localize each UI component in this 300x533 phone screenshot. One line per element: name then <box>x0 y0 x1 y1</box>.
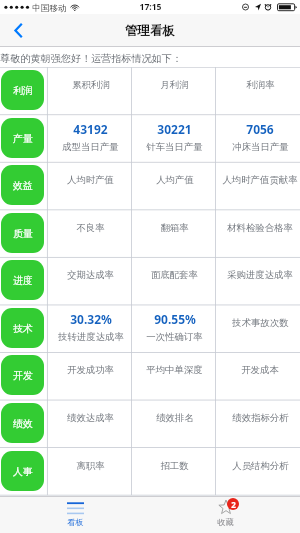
button[interactable]: 采购进度达成率 <box>216 257 300 305</box>
staticText: 月利润 <box>160 79 189 91</box>
staticText: 43192 <box>73 121 108 137</box>
staticText: 招工数 <box>160 460 189 472</box>
button[interactable]: 进度 <box>1 260 44 300</box>
button[interactable]: 月利润 <box>131 67 215 115</box>
staticText: 绩效达成率 <box>67 412 114 424</box>
staticText: 累积利润 <box>72 79 110 91</box>
button[interactable]: 30.32% <box>47 305 131 353</box>
staticText: 成型当日产量 <box>62 141 119 153</box>
staticText: 人员结构分析 <box>232 460 289 472</box>
staticText: 产量 <box>13 132 33 144</box>
button[interactable]: 面底配套率 <box>131 257 215 305</box>
button[interactable]: 绩效排名 <box>131 400 215 448</box>
button[interactable]: 2 <box>150 496 300 533</box>
staticText: 一次性确订率 <box>146 331 203 343</box>
staticText: 绩效 <box>13 417 33 429</box>
staticText: 面底配套率 <box>151 269 198 281</box>
button[interactable]: 翻箱率 <box>131 210 215 257</box>
staticText: 收藏 <box>217 517 234 527</box>
staticText: 管理看板 <box>125 23 175 39</box>
button[interactable]: 看板 <box>0 496 150 533</box>
staticText: 离职率 <box>76 460 105 472</box>
button[interactable]: 离职率 <box>47 448 131 496</box>
staticText: 效益 <box>13 179 33 191</box>
button[interactable]: 利润率 <box>216 67 300 115</box>
button[interactable]: 人事 <box>1 451 44 491</box>
staticText: 进度 <box>13 274 33 286</box>
staticText: 技术事故次数 <box>232 317 289 329</box>
button[interactable]: 交期达成率 <box>47 257 131 305</box>
button[interactable]: 技术事故次数 <box>216 305 300 353</box>
staticText: 平均中单深度 <box>146 364 203 376</box>
staticText: 交期达成率 <box>67 269 114 281</box>
staticText: 材料检验合格率 <box>227 222 293 234</box>
button[interactable]: 开发 <box>1 355 44 395</box>
staticText: 开发成本 <box>241 364 279 376</box>
button[interactable]: 累积利润 <box>47 67 131 115</box>
button[interactable]: 人均时产值贡献率 <box>216 162 300 210</box>
staticText: 采购进度达成率 <box>227 269 293 281</box>
staticText: 2 <box>231 499 236 510</box>
button[interactable]: 绩效指标分析 <box>216 400 300 448</box>
button[interactable]: 7056 <box>216 115 300 163</box>
staticText: 7056 <box>246 121 274 137</box>
staticText: 翻箱率 <box>160 222 189 234</box>
staticText: 人均产值 <box>156 174 194 186</box>
button[interactable]: 平均中单深度 <box>131 352 215 400</box>
staticText: 针车当日产量 <box>146 141 203 153</box>
staticText: 冲床当日产量 <box>232 141 289 153</box>
button[interactable]: 人员结构分析 <box>216 448 300 496</box>
staticText: 开发 <box>13 369 33 381</box>
button[interactable]: 利润 <box>1 70 44 110</box>
staticText: 不良率 <box>76 222 105 234</box>
button[interactable]: 产量 <box>1 118 44 158</box>
staticText: 技转进度达成率 <box>58 331 124 343</box>
staticText: 30.32% <box>70 311 112 327</box>
button[interactable]: 人均产值 <box>131 162 215 210</box>
staticText: 人事 <box>13 465 33 477</box>
staticText: 人均时产值贡献率 <box>222 174 298 186</box>
button[interactable]: 43192 <box>47 115 131 163</box>
staticText: 中国移动 <box>32 3 67 14</box>
button[interactable]: 绩效 <box>1 403 44 443</box>
staticText: 尊敬的黄朝强您好！运营指标情况如下： <box>0 52 182 65</box>
staticText: 30221 <box>157 121 192 137</box>
button[interactable]: 90.55% <box>131 305 215 353</box>
staticText: 利润率 <box>246 79 275 91</box>
staticText: 17:15 <box>139 1 162 13</box>
staticText: 利润 <box>13 84 33 96</box>
button[interactable]: 30221 <box>131 115 215 163</box>
button[interactable]: 材料检验合格率 <box>216 210 300 257</box>
staticText: 人均时产值 <box>67 174 114 186</box>
button[interactable]: 不良率 <box>47 210 131 257</box>
button[interactable]: 开发成本 <box>216 352 300 400</box>
button[interactable]: 返回 <box>0 14 36 47</box>
button[interactable]: 招工数 <box>131 448 215 496</box>
button[interactable]: 技术 <box>1 308 44 348</box>
button[interactable]: 开发成功率 <box>47 352 131 400</box>
staticText: 技术 <box>13 322 33 334</box>
staticText: 绩效排名 <box>156 412 194 424</box>
button[interactable]: 质量 <box>1 213 44 253</box>
staticText: 看板 <box>67 517 84 527</box>
button[interactable]: 人均时产值 <box>47 162 131 210</box>
staticText: 质量 <box>13 227 33 239</box>
button[interactable]: 效益 <box>1 165 44 205</box>
staticText: 90.55% <box>154 311 196 327</box>
button[interactable]: 绩效达成率 <box>47 400 131 448</box>
staticText: 开发成功率 <box>67 364 114 376</box>
staticText: 绩效指标分析 <box>232 412 289 424</box>
